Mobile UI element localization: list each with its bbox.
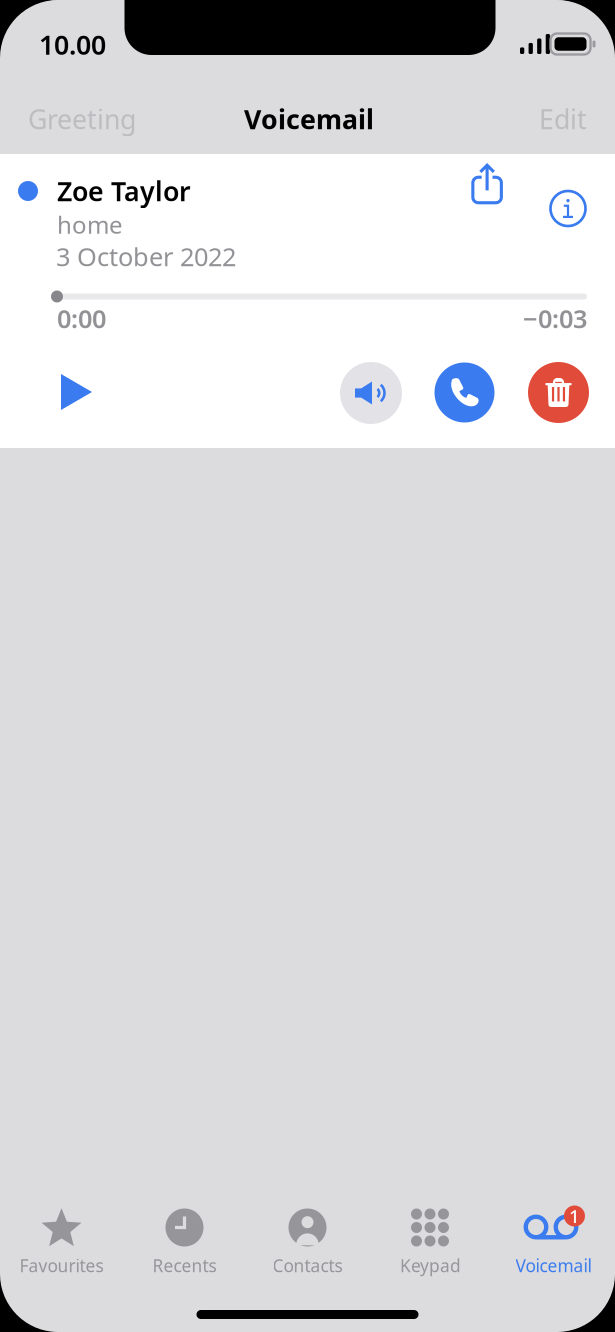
button[interactable]: Greeting	[28, 91, 158, 147]
staticText: Contacts	[272, 1254, 342, 1277]
staticText: Edit	[539, 101, 587, 137]
button[interactable]: Favourites	[0, 1206, 123, 1274]
staticText: 1	[569, 1204, 580, 1228]
button[interactable]: Play	[41, 357, 111, 427]
staticText: Voicemail	[515, 1254, 591, 1277]
staticText: Voicemail	[244, 101, 374, 137]
staticText: −0:03	[523, 302, 587, 335]
button[interactable]: Edit	[497, 91, 587, 147]
button[interactable]: Call back	[434, 362, 494, 422]
staticText: 0:00	[57, 302, 106, 335]
staticText: Recents	[152, 1254, 216, 1277]
button[interactable]: Contacts	[246, 1206, 369, 1274]
staticText: Zoe Taylor	[57, 173, 191, 209]
button[interactable]: Details	[542, 182, 594, 234]
button[interactable]: Delete	[528, 362, 589, 423]
staticText: Keypad	[400, 1254, 461, 1277]
staticText: 10.00	[39, 27, 106, 62]
button[interactable]: Recents	[123, 1206, 246, 1274]
staticText: Greeting	[28, 101, 136, 137]
button[interactable]: Keypad	[369, 1206, 492, 1274]
staticText: 3 October 2022	[56, 240, 236, 273]
button[interactable]: 1	[492, 1206, 615, 1274]
staticText: Favourites	[19, 1254, 103, 1277]
staticText: home	[57, 209, 123, 240]
button[interactable]: Speaker	[340, 362, 402, 424]
button[interactable]: Share	[461, 155, 513, 207]
